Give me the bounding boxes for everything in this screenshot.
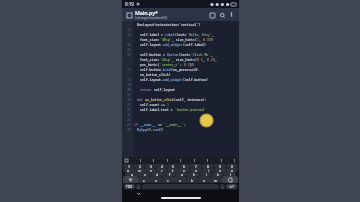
staticText: def: [137, 98, 145, 102]
button[interactable]: Key 1: [151, 158, 156, 163]
button[interactable]: z: [138, 176, 150, 183]
button[interactable]: n: [198, 176, 210, 183]
staticText: self.count +=: [140, 103, 167, 107]
staticText: , size_hint=(: [172, 38, 197, 42]
button[interactable]: 8: [202, 164, 214, 168]
button[interactable]: g: [176, 172, 188, 176]
button[interactable]: Key 7: [232, 158, 237, 163]
button[interactable]: Backspace: [222, 176, 238, 183]
staticText: 19: [127, 83, 131, 87]
staticText: l: [230, 172, 231, 176]
button[interactable]: y: [178, 168, 190, 172]
staticText: 0.5: [197, 58, 203, 62]
staticText: ,: [138, 184, 139, 189]
button[interactable]: 0: [226, 164, 238, 168]
button[interactable]: ,: [136, 184, 141, 189]
button[interactable]: ?123: [124, 184, 135, 189]
button[interactable]: x: [150, 176, 162, 183]
staticText: BoxLayout(orientation='vertical'): [137, 23, 201, 27]
staticText: '30sp': [160, 38, 172, 42]
button[interactable]: 4: [156, 164, 167, 168]
button[interactable]: w: [134, 168, 145, 172]
button[interactable]: Search: [217, 10, 227, 20]
staticText: q: [127, 168, 130, 172]
button[interactable]: Key 0: [138, 158, 143, 163]
staticText: self.label =: [140, 33, 165, 37]
staticText: :: [180, 63, 184, 67]
staticText: ,: [199, 38, 203, 42]
button[interactable]: p: [226, 168, 238, 172]
staticText: 1: [167, 103, 169, 107]
button[interactable]: Enter: [226, 184, 237, 189]
staticText: 18: [127, 78, 131, 82]
button[interactable]: 3: [145, 164, 156, 168]
staticText: r: [161, 168, 163, 172]
staticText: __name__: [140, 123, 156, 127]
staticText: Main.py*: [135, 9, 158, 16]
staticText: 28: [127, 128, 131, 132]
staticText: ?123: [126, 185, 133, 189]
staticText: z: [143, 178, 145, 182]
button[interactable]: Key 2: [165, 158, 170, 163]
button[interactable]: f: [164, 172, 176, 176]
staticText: 0.5: [184, 63, 190, 67]
staticText: c: [167, 178, 169, 182]
staticText: g: [181, 172, 184, 176]
button[interactable]: j: [200, 172, 212, 176]
button[interactable]: t: [167, 168, 178, 172]
button[interactable]: l: [224, 172, 236, 176]
button[interactable]: u: [190, 168, 202, 172]
staticText: k: [217, 172, 219, 176]
button[interactable]: a: [125, 172, 138, 176]
button[interactable]: o: [214, 168, 226, 172]
button[interactable]: Key 4: [192, 158, 197, 163]
button[interactable]: d: [151, 172, 164, 176]
staticText: 0.3: [203, 38, 209, 42]
button[interactable]: 6: [178, 164, 190, 168]
button[interactable]: Shift: [123, 176, 138, 183]
staticText: w: [138, 168, 141, 172]
staticText: 9: [219, 164, 221, 168]
button[interactable]: r: [156, 168, 167, 172]
staticText: 1: [128, 164, 130, 168]
staticText: 3: [150, 164, 152, 168]
staticText: 1: [197, 38, 199, 42]
button[interactable]: 2: [134, 164, 145, 168]
button[interactable]: Key 3: [178, 158, 183, 163]
button[interactable]: Toolbar: [124, 158, 129, 163]
staticText: 'Click Me': [191, 53, 211, 57]
button[interactable]: Run: [207, 10, 217, 20]
button[interactable]: Key 6: [219, 158, 224, 163]
button[interactable]: s: [138, 172, 151, 176]
button[interactable]: Key 5: [205, 158, 210, 163]
button[interactable]: c: [162, 176, 174, 183]
staticText: o: [219, 168, 221, 172]
button[interactable]: Menu: [125, 11, 133, 19]
staticText: 13: [127, 33, 131, 37]
staticText: 0: [231, 164, 233, 168]
button[interactable]: k: [212, 172, 224, 176]
staticText: on_button_click: [145, 98, 174, 102]
button[interactable]: 9: [214, 164, 226, 168]
staticText: MyApp: [137, 128, 147, 132]
button[interactable]: Hide keyboard: [136, 191, 141, 196]
button[interactable]: .: [220, 184, 225, 189]
staticText: 21: [127, 93, 131, 97]
staticText: '24sp': [160, 58, 172, 62]
staticText: self.button =: [140, 53, 167, 57]
button[interactable]: e: [145, 168, 156, 172]
button[interactable]: 5: [167, 164, 178, 168]
button[interactable]: 1: [123, 164, 134, 168]
staticText: t: [172, 168, 174, 172]
button[interactable]: 7: [190, 164, 202, 168]
button[interactable]: q: [123, 168, 134, 172]
button[interactable]: v: [174, 176, 186, 183]
button[interactable]: i: [202, 168, 214, 172]
staticText: '__main__': [164, 123, 184, 127]
staticText: v: [179, 178, 181, 182]
button[interactable]: b: [186, 176, 198, 183]
button[interactable]: h: [188, 172, 200, 176]
button[interactable]: More options: [227, 10, 236, 19]
button[interactable]: m: [210, 176, 222, 183]
